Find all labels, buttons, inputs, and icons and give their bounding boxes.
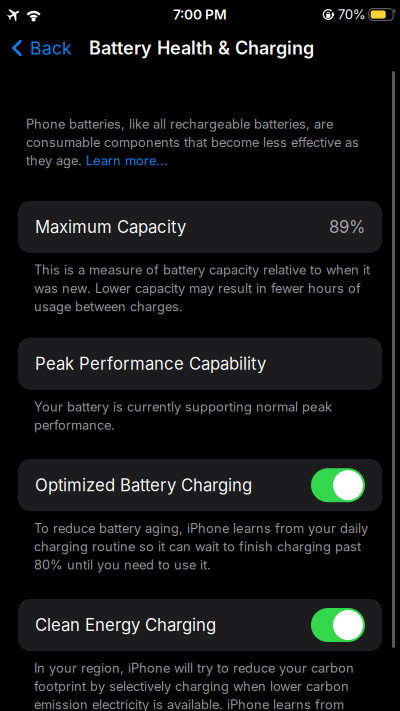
button[interactable]: Optimized Battery Charging xyxy=(0,459,400,511)
staticText: Peak Performance Capability xyxy=(35,354,266,374)
staticText: Maximum Capacity xyxy=(35,217,186,237)
button[interactable]: Clean Energy Charging xyxy=(0,599,400,651)
staticText: 89% xyxy=(329,217,365,237)
staticText: In your region, iPhone will try to reduc… xyxy=(34,659,354,711)
button[interactable]: Back xyxy=(0,31,79,65)
staticText: 70% xyxy=(338,6,366,22)
staticText: Battery Health & Charging xyxy=(89,37,314,59)
staticText: Your battery is currently supporting nor… xyxy=(34,398,332,434)
staticText: Phone batteries, like all rechargeable b… xyxy=(26,115,359,170)
staticText: Back xyxy=(30,37,72,59)
staticText: This is a measure of battery capacity re… xyxy=(34,261,370,316)
staticText: Optimized Battery Charging xyxy=(35,475,252,495)
staticText: 7:00 PM xyxy=(173,6,227,23)
staticText: To reduce battery aging, iPhone learns f… xyxy=(34,519,368,574)
staticText: Clean Energy Charging xyxy=(35,615,216,635)
